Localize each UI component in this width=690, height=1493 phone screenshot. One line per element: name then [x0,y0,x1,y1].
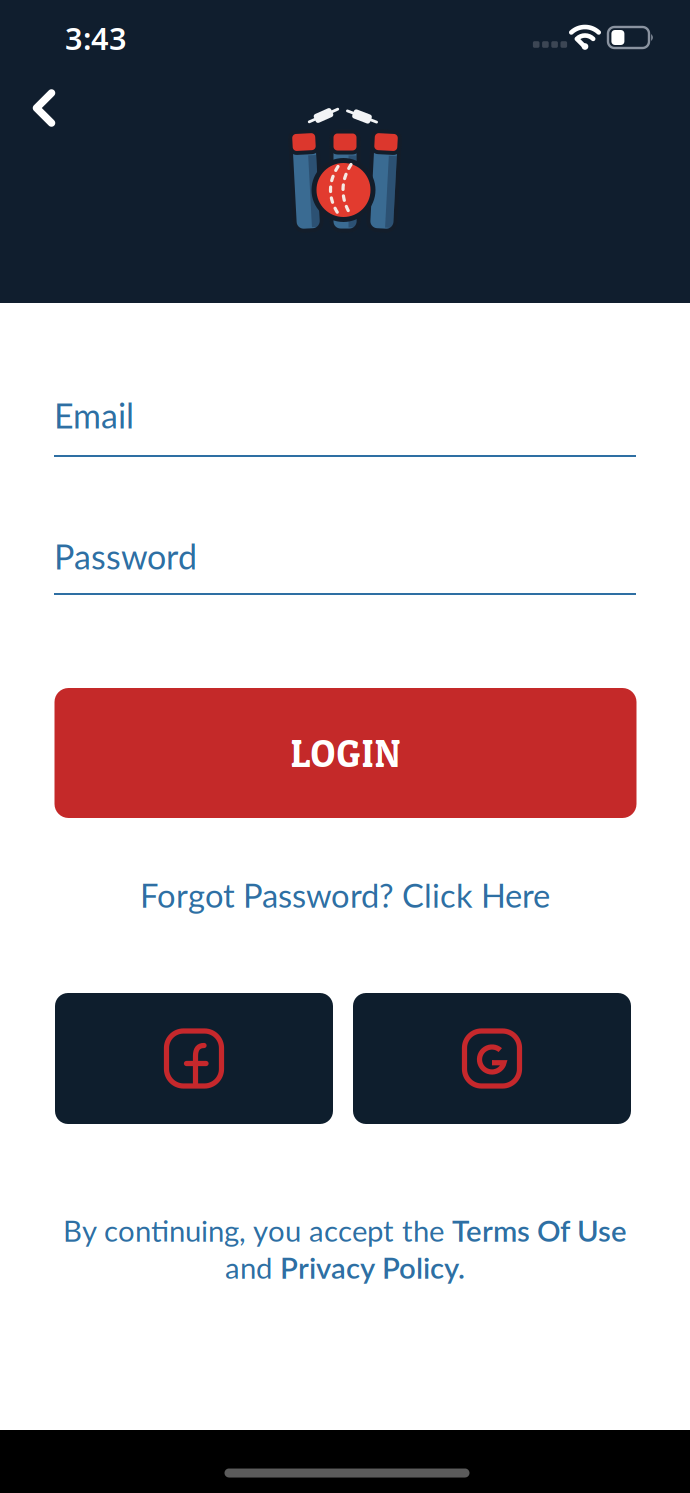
staticText: Email [54,395,134,436]
button[interactable]: Terms Of Use [452,1213,627,1248]
button[interactable]: Login with Google [353,993,631,1124]
button[interactable]: Login with Facebook [55,993,333,1124]
button[interactable]: LOGIN [54,688,636,818]
button[interactable]: Email [54,395,636,457]
staticText: LOGIN [290,729,400,776]
staticText: Privacy Policy. [280,1250,465,1285]
staticText: Terms Of Use [452,1213,627,1248]
staticText: By continuing, you accept the [63,1213,452,1248]
button[interactable]: Password [54,536,636,595]
staticText: and [225,1250,280,1285]
button[interactable]: Privacy Policy. [280,1250,465,1285]
button[interactable]: Forgot Password? Click Here [140,875,550,915]
staticText: Forgot Password? Click Here [140,875,550,915]
button[interactable]: Back [14,78,74,138]
staticText: 3:43 [65,18,127,58]
staticText: Password [54,536,197,577]
